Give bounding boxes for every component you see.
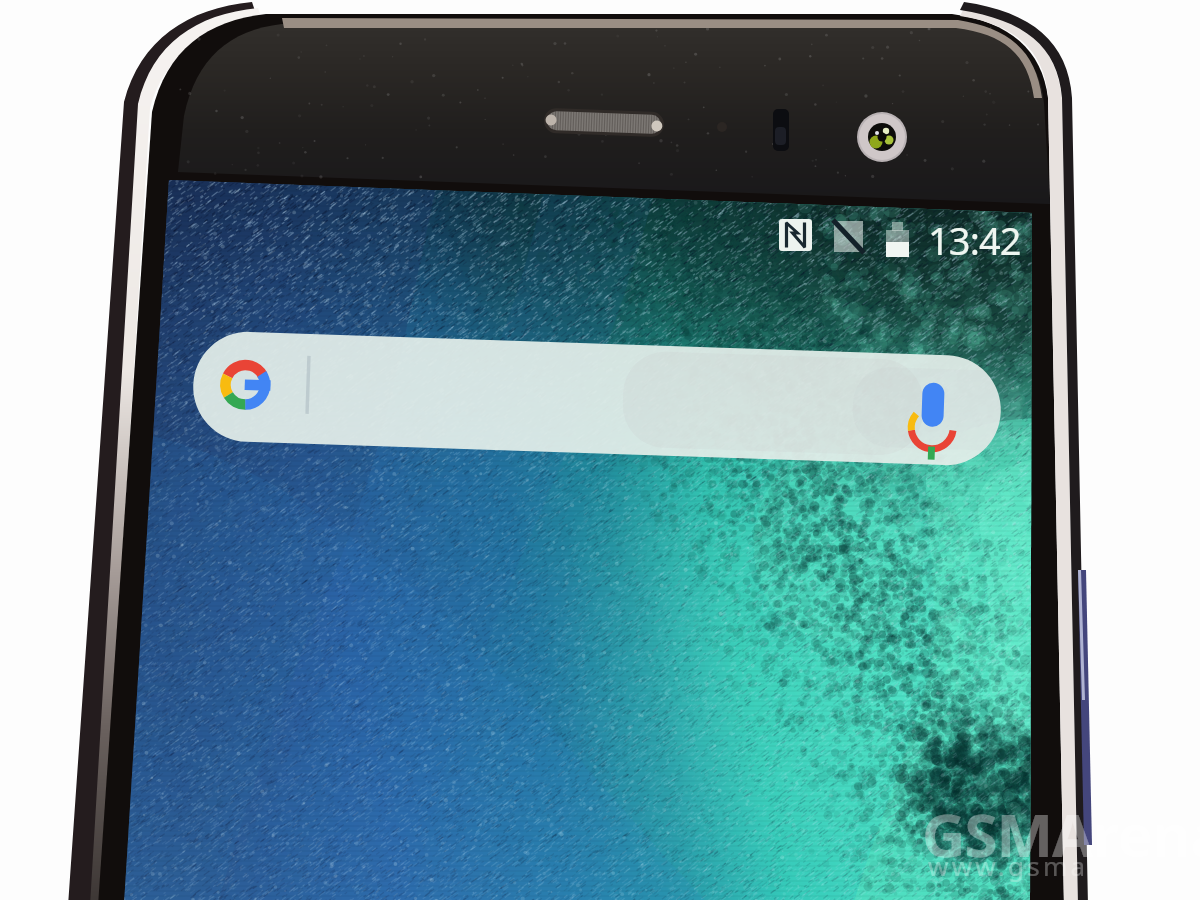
button[interactable]: Google Pixel phone home screen photo — [0, 0, 1200, 900]
